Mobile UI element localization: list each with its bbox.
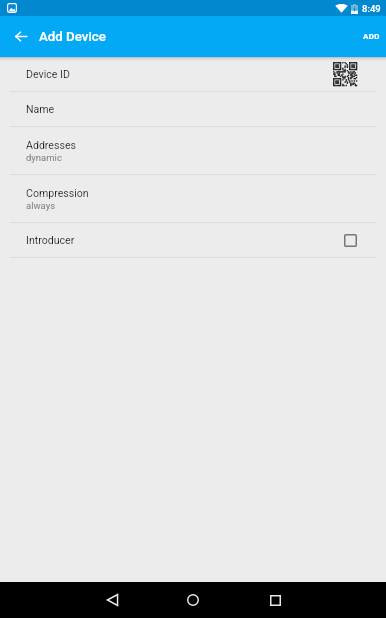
staticText: dynamic: [26, 152, 62, 163]
staticText: Name: [26, 103, 55, 115]
staticText: Compression: [26, 187, 89, 199]
staticText: Introducer: [26, 234, 75, 246]
button[interactable]: Device ID: [0, 57, 386, 91]
staticText: Addresses: [26, 139, 76, 151]
button[interactable]: ADD: [355, 22, 386, 51]
staticText: Device ID: [26, 68, 70, 80]
button[interactable]: Addresses: [0, 127, 386, 174]
button[interactable]: Back: [0, 16, 39, 57]
button[interactable]: Back: [88, 582, 136, 618]
staticText: ADD: [363, 32, 380, 41]
button[interactable]: Home: [169, 582, 217, 618]
staticText: 8:49: [362, 3, 381, 14]
staticText: always: [26, 200, 56, 211]
staticText: Add Device: [39, 29, 106, 45]
button[interactable]: Introducer: [0, 223, 386, 257]
button[interactable]: Compression: [0, 175, 386, 222]
button[interactable]: Name: [0, 92, 386, 126]
button[interactable]: Recents: [251, 582, 299, 618]
